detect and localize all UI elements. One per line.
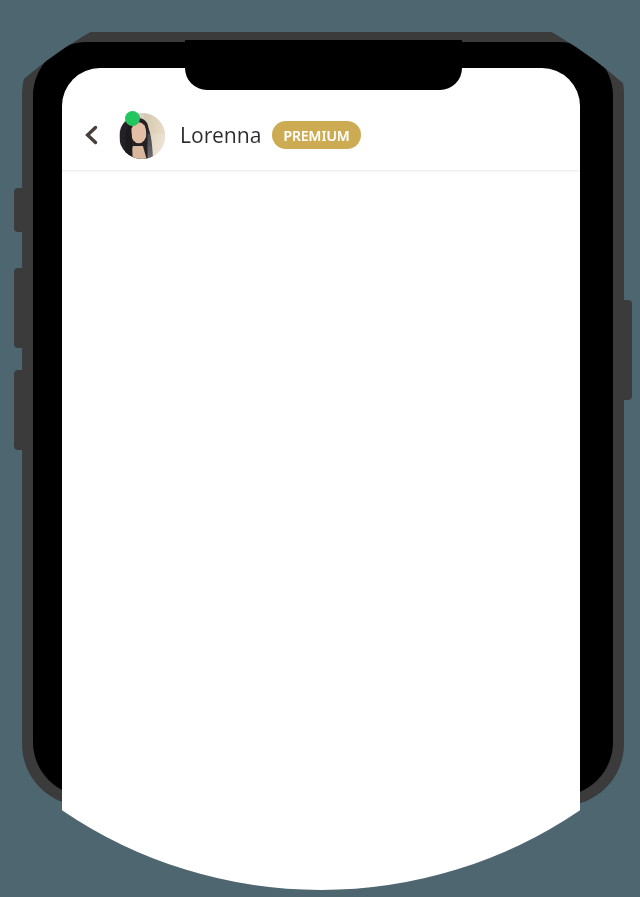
button[interactable]: Profile photo	[118, 111, 166, 159]
button[interactable]: PREMIUM	[272, 121, 361, 149]
staticText: PREMIUM	[283, 126, 350, 145]
button[interactable]: Back	[72, 115, 112, 155]
staticText: Lorenna	[180, 121, 262, 150]
